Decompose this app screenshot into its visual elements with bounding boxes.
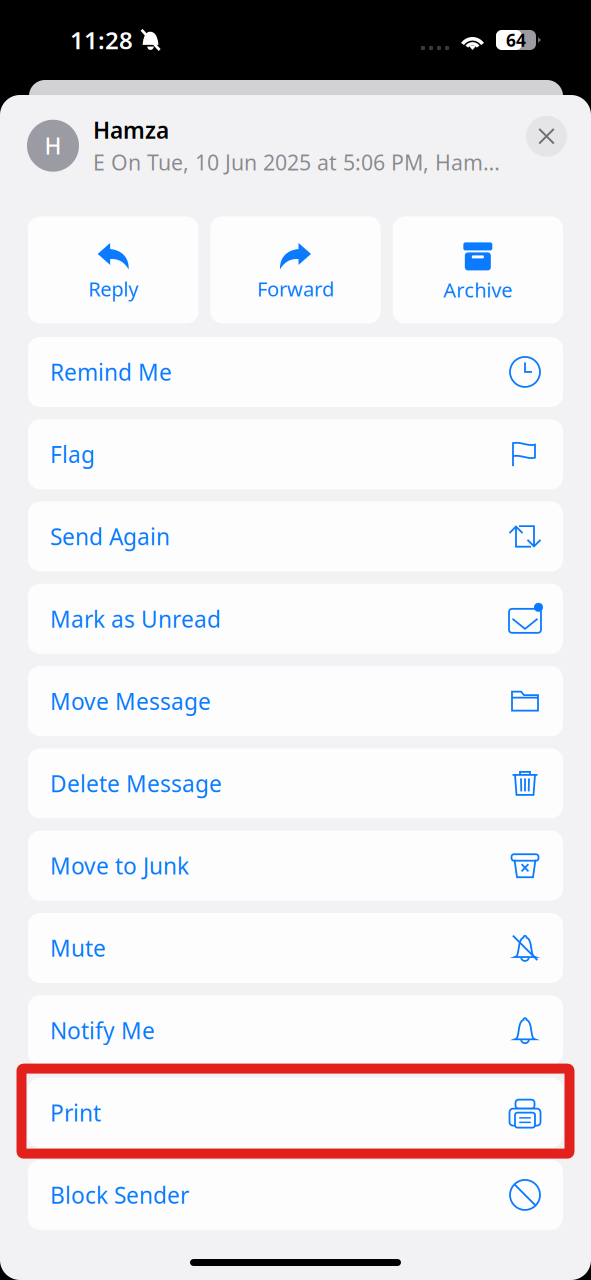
staticText: E On Tue, 10 Jun 2025 at 5:06 PM, Ham…: [93, 148, 500, 176]
button[interactable]: Print: [28, 1078, 563, 1148]
staticText: Print: [50, 1098, 101, 1128]
staticText: Forward: [257, 275, 334, 302]
staticText: Delete Message: [50, 768, 222, 798]
button[interactable]: Forward: [210, 216, 381, 323]
button[interactable]: Flag: [28, 419, 563, 489]
staticText: Remind Me: [50, 357, 172, 387]
staticText: Send Again: [50, 521, 170, 552]
staticText: 11:28: [70, 24, 133, 56]
staticText: Mute: [50, 933, 106, 963]
button[interactable]: Move Message: [28, 666, 563, 736]
staticText: Move to Junk: [50, 851, 189, 881]
button[interactable]: Close: [526, 116, 567, 176]
staticText: Archive: [443, 276, 512, 303]
staticText: 64: [506, 28, 526, 51]
staticText: Move Message: [50, 686, 211, 716]
button[interactable]: Mark as Unread: [28, 584, 563, 654]
staticText: Hamza: [93, 115, 169, 145]
button[interactable]: Notify Me: [28, 995, 563, 1065]
staticText: Mark as Unread: [50, 604, 221, 634]
staticText: Notify Me: [50, 1015, 155, 1045]
staticText: Reply: [88, 275, 138, 302]
button[interactable]: Block Sender: [28, 1160, 563, 1230]
button[interactable]: Delete Message: [28, 748, 563, 818]
button[interactable]: Reply: [28, 216, 198, 323]
button[interactable]: Archive: [393, 216, 563, 323]
staticText: Block Sender: [50, 1180, 189, 1210]
staticText: Flag: [50, 439, 95, 469]
button[interactable]: Mute: [28, 913, 563, 983]
button[interactable]: Remind Me: [28, 337, 563, 407]
button[interactable]: Send Again: [28, 501, 563, 571]
staticText: H: [44, 131, 61, 161]
button[interactable]: Move to Junk: [28, 831, 563, 901]
